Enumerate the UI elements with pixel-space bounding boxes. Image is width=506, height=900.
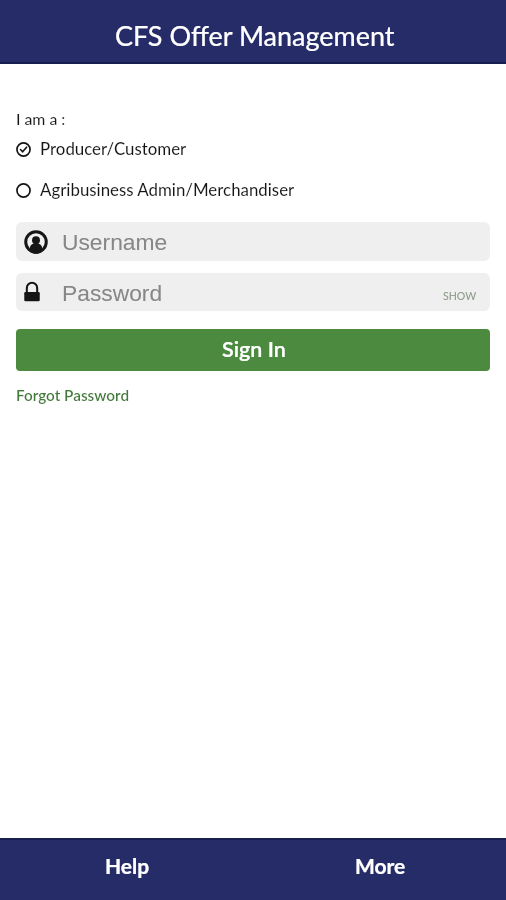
other: Password lock xyxy=(20,280,44,304)
button[interactable]: Help xyxy=(0,838,253,900)
button[interactable]: Password lock xyxy=(16,273,490,311)
staticText: Sign In xyxy=(222,336,286,362)
staticText: Username xyxy=(62,229,168,254)
staticText: SHOW xyxy=(443,290,477,303)
staticText: Producer/Customer xyxy=(40,138,187,158)
staticText: Help xyxy=(105,853,150,878)
button[interactable]: More xyxy=(253,838,506,900)
other: User account xyxy=(24,230,48,254)
button[interactable]: Show password xyxy=(428,278,490,307)
staticText: Agribusiness Admin/Merchandiser xyxy=(40,179,295,199)
staticText: Password xyxy=(62,280,163,305)
button[interactable]: Agribusiness Admin/Merchandiser xyxy=(0,177,506,203)
button[interactable]: Producer/Customer xyxy=(0,136,506,162)
staticText: Forgot Password xyxy=(16,386,130,404)
staticText: More xyxy=(355,853,406,878)
button[interactable]: User account xyxy=(16,222,490,261)
staticText: I am a : xyxy=(16,109,66,128)
staticText: CFS Offer Management xyxy=(115,19,395,51)
button[interactable]: Forgot Password xyxy=(16,385,130,403)
button[interactable]: Sign In xyxy=(16,329,490,371)
